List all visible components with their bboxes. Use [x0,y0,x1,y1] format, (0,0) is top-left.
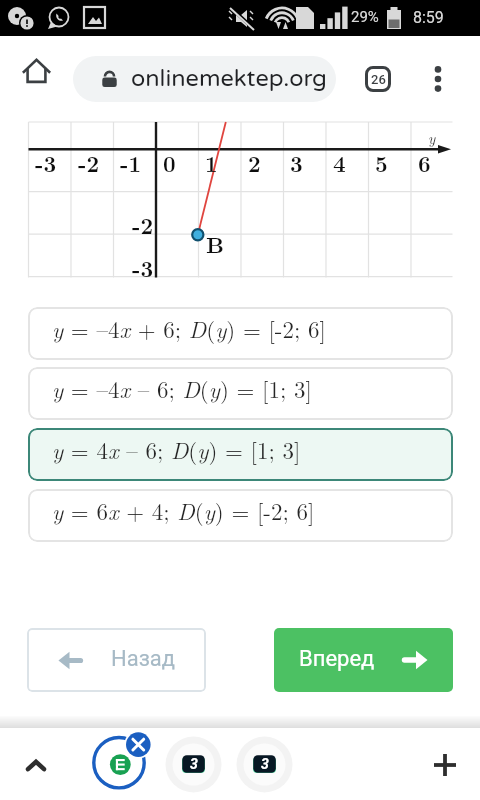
staticText: -2 [78,147,100,178]
staticText: 1 [205,147,218,178]
button[interactable]: More options [414,55,462,103]
staticText: y = –4x + 6; D(y) = [-2; 6] [52,312,326,345]
staticText: B [206,228,224,259]
button[interactable]: Назад [27,628,206,692]
button[interactable]: Tab 3 [236,736,293,793]
staticText: y = 4x – 6; D(y) = [1; 3] [52,433,301,466]
button[interactable]: Вперед [274,628,453,692]
staticText: 5 [375,147,388,178]
staticText: 3 [190,756,198,772]
button[interactable]: Tabs [352,53,404,105]
button[interactable]: onlinemektep.org [73,56,336,102]
button[interactable]: y = 4x – 6; D(y) = [1; 3] [28,428,453,481]
staticText: 26 [371,72,386,87]
staticText: 8:59 [413,8,444,27]
button[interactable]: Home [13,47,60,94]
staticText: 3 [261,756,269,772]
staticText: Вперед [299,646,375,672]
staticText: 29% [351,8,379,26]
staticText: 0 [163,147,176,178]
button[interactable]: y = 6x + 4; D(y) = [-2; 6] [28,489,453,542]
button[interactable]: Current tab [87,728,155,796]
button[interactable]: y = –4x + 6; D(y) = [-2; 6] [28,307,453,360]
button[interactable]: Tab 2 [165,736,222,793]
staticText: -3 [35,147,57,178]
staticText: onlinemektep.org [131,64,327,92]
staticText: -3 [132,252,154,283]
staticText: y = 6x + 4; D(y) = [-2; 6] [52,494,315,527]
staticText: -1 [120,147,142,178]
staticText: 2 [248,147,261,178]
staticText: y = –4x – 6; D(y) = [1; 3] [52,372,312,405]
staticText: 4 [333,147,346,178]
button[interactable]: Expand toolbar [12,742,60,790]
button[interactable]: y = –4x – 6; D(y) = [1; 3] [28,367,453,420]
staticText: y [428,127,436,148]
staticText: -2 [132,209,154,240]
staticText: 6 [418,147,431,178]
button[interactable]: New tab [421,741,469,789]
staticText: Назад [111,646,176,672]
staticText: 3 [290,147,303,178]
